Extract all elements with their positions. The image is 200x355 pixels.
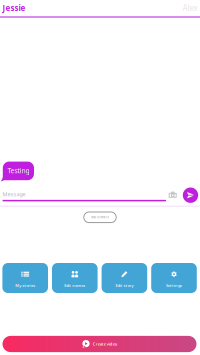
button[interactable]: Send	[183, 187, 198, 203]
staticText: Edit names	[64, 283, 85, 288]
staticText: Jessie	[2, 3, 25, 13]
button[interactable]: Edit names	[52, 263, 98, 293]
staticText: Settings	[166, 283, 182, 288]
button[interactable]: My stories	[2, 263, 48, 293]
staticText: Message	[3, 191, 26, 198]
button[interactable]: Jessie	[2, 0, 32, 15]
staticText: New comment	[91, 215, 109, 219]
staticText: My stories	[15, 283, 35, 288]
button[interactable]: Settings	[151, 263, 197, 293]
staticText: Edit story	[115, 283, 133, 288]
staticText: Create video	[93, 341, 117, 347]
button[interactable]: New comment	[84, 212, 116, 223]
staticText: Testing	[7, 166, 29, 175]
button[interactable]: Attach photo	[165, 186, 181, 202]
button[interactable]: Alex	[167, 0, 197, 15]
staticText: Alex	[182, 3, 197, 13]
button[interactable]: Edit story	[102, 263, 147, 293]
button[interactable]: Create video	[2, 336, 196, 352]
